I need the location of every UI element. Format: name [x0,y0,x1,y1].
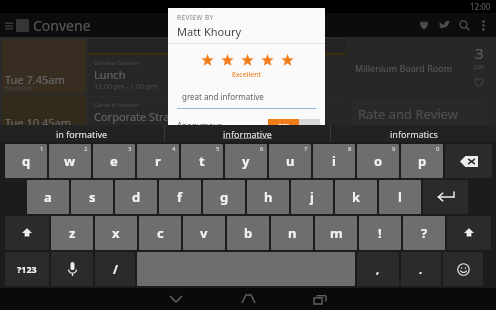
staticText: Breakfast [5,84,32,92]
staticText: in formative [56,128,108,140]
button[interactable]: n [271,216,313,250]
button[interactable]: u [269,144,311,178]
button[interactable]: Emoji [443,252,483,286]
button[interactable]: s [71,180,113,214]
staticText: u [286,152,295,170]
staticText: ••• [245,135,251,142]
button[interactable]: Twitter [434,15,454,35]
button[interactable]: / [95,252,135,286]
button[interactable]: y [225,144,267,178]
staticText: l [398,188,402,206]
button[interactable]: , [357,252,399,286]
button[interactable]: p [401,144,443,178]
staticText: s [89,188,96,206]
staticText: Tue 10.45am [5,115,71,130]
button[interactable]: Rate 3 stars [237,50,257,70]
button[interactable]: Rate 2 stars [217,50,237,70]
button[interactable]: Hide keyboard [164,288,188,310]
button[interactable]: z [51,216,93,250]
button[interactable]: Rate 5 stars [277,50,297,70]
button[interactable]: Voice input [51,252,93,286]
button[interactable]: a [27,180,69,214]
button[interactable]: q [5,144,47,178]
button[interactable]: d [115,180,157,214]
staticText: 7 [304,145,308,153]
staticText: ?123 [17,263,37,275]
button[interactable]: c [139,216,181,250]
staticText: Rate and Review [358,105,458,123]
button[interactable]: g [203,180,245,214]
staticText: 5 [216,145,220,153]
button[interactable]: l [379,180,421,214]
staticText: k [352,188,361,206]
staticText: . [419,262,423,277]
button[interactable]: informatics [331,125,496,142]
button[interactable]: Favorites [414,15,434,35]
staticText: / [113,261,118,277]
button[interactable]: m [315,216,357,250]
button[interactable]: Home [236,288,260,310]
staticText: 1.00 pm - 1.30 pm [94,124,154,134]
staticText: c [157,224,164,242]
button[interactable]: More options [474,16,492,34]
button[interactable]: Tue 10.45am [2,95,86,136]
button[interactable]: f [159,180,201,214]
button[interactable]: Shift [447,216,491,250]
button[interactable]: e [93,144,135,178]
button[interactable]: Backspace [445,144,492,178]
button[interactable]: o [357,144,399,178]
staticText: i [332,152,336,170]
staticText: Convene [33,16,91,35]
button[interactable]: w [49,144,91,178]
button[interactable]: Rate 4 stars [257,50,277,70]
staticText: JUN [474,63,485,71]
button[interactable]: Anonymous toggle, off [268,119,320,132]
button[interactable]: General Session [94,59,346,92]
staticText: 0 [436,145,440,153]
staticText: m [330,224,343,242]
staticText: Corporate Strategy Persp [94,109,225,124]
button[interactable]: k [335,180,377,214]
button[interactable]: Rate 1 stars [197,50,217,70]
staticText: 12:00 [470,1,491,12]
staticText: y [242,152,250,170]
button[interactable]: i [313,144,355,178]
button[interactable]: ?123 [5,252,49,286]
button[interactable]: Shift [5,216,49,250]
button[interactable]: j [291,180,333,214]
button[interactable]: . [401,252,441,286]
button[interactable]: Menu [2,19,16,33]
staticText: 12.00 pm - 1.00 pm [94,82,158,92]
button[interactable]: Recents [308,288,332,310]
button[interactable]: Enter [423,180,468,214]
button[interactable]: General Session [94,101,346,134]
button[interactable]: h [247,180,289,214]
button[interactable]: in formative [0,125,164,142]
staticText: ! [378,224,382,242]
button[interactable]: ? [403,216,445,250]
button[interactable]: r [137,144,179,178]
staticText: Tue 7.45am [5,72,65,87]
staticText: Lunch [94,67,126,82]
staticText: , [376,262,380,277]
staticText: 2 [84,145,88,153]
button[interactable]: Search [454,15,474,35]
staticText: q [22,152,31,170]
button[interactable]: x [95,216,137,250]
button[interactable]: informative [165,125,330,142]
staticText: 8 [348,145,352,153]
staticText: o [374,152,383,170]
button[interactable]: Tue 7.45am [2,39,86,93]
button[interactable]: t [181,144,223,178]
staticText: Millenium Board Room [355,62,453,74]
staticText: General Session [94,59,139,67]
staticText: j [310,188,314,206]
button[interactable]: b [227,216,269,250]
button[interactable]: v [183,216,225,250]
staticText: z [69,224,76,242]
button[interactable]: ! [359,216,401,250]
